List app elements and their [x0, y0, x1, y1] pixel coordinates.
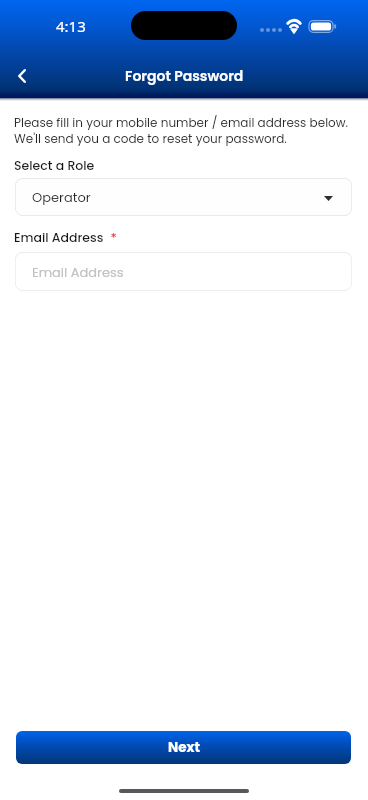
staticText: We'll send you a code to reset your pass… — [14, 130, 287, 147]
staticText: Select a Role — [14, 157, 95, 174]
staticText: Forgot Password — [125, 66, 244, 86]
staticText: Next — [168, 738, 200, 757]
staticText: Email Address — [32, 263, 124, 281]
staticText: Operator — [32, 188, 91, 206]
staticText: Email Address — [14, 229, 104, 246]
staticText: * — [104, 229, 117, 246]
button[interactable]: Back — [7, 61, 37, 91]
staticText: 4:13 — [56, 16, 86, 36]
button[interactable]: Email Address — [15, 252, 352, 291]
staticText: Please fill in your mobile number / emai… — [14, 114, 349, 131]
button[interactable]: Next — [16, 731, 351, 764]
button[interactable]: Operator — [15, 178, 352, 216]
